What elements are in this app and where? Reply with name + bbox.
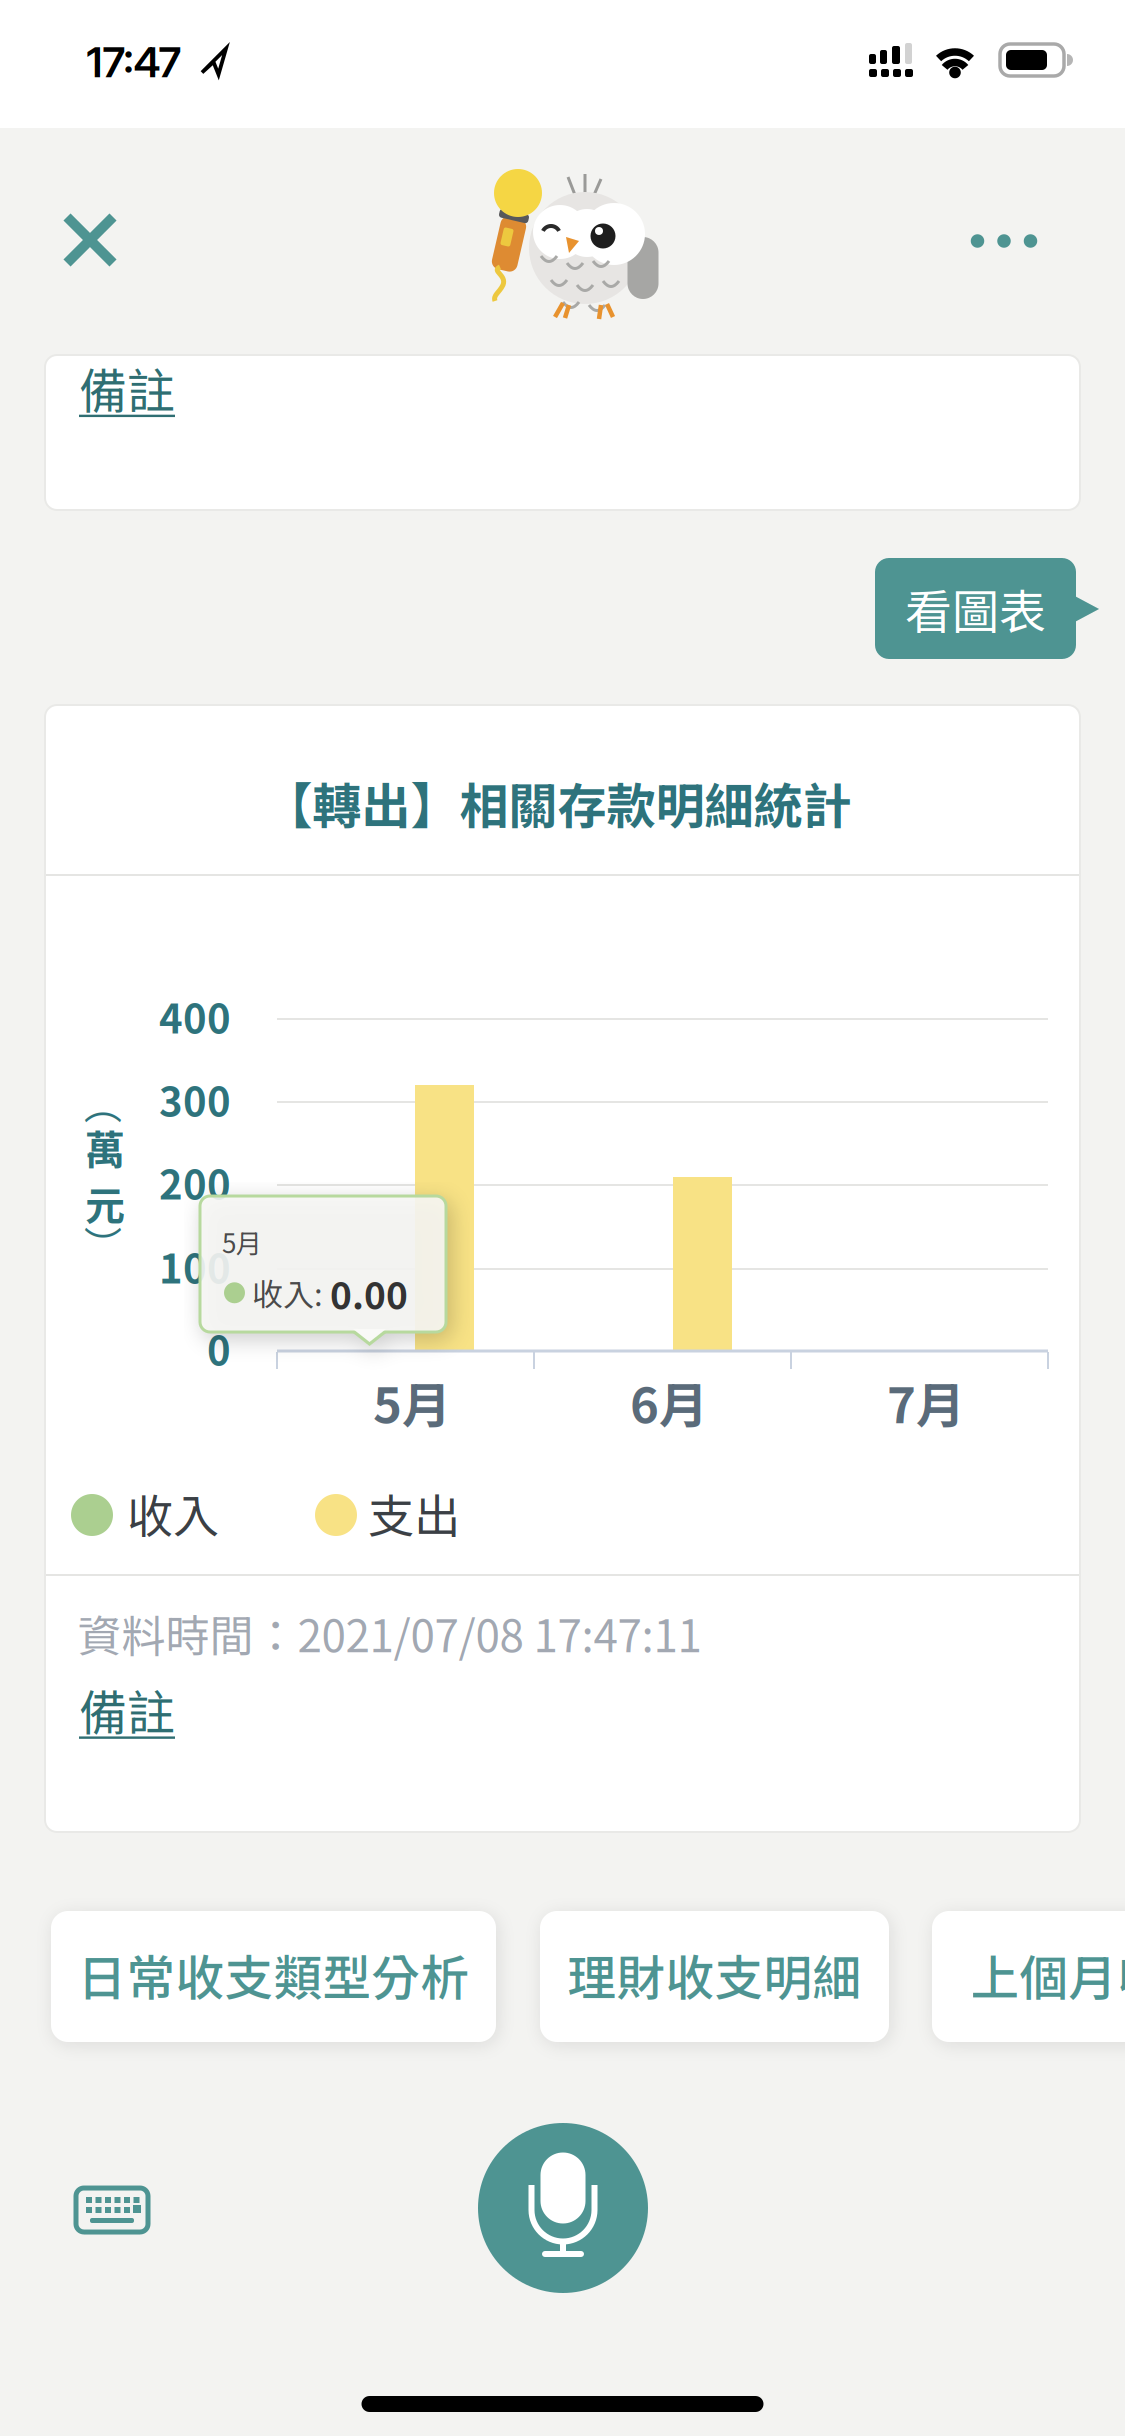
staticText: 【轉出】相關存款明細統計 [263, 767, 851, 838]
staticText: 看圖表 [905, 574, 1046, 643]
staticText: 支出 [368, 1480, 460, 1546]
button[interactable]: 備註 [45, 355, 1080, 510]
button[interactable]: 上個月收支明細 [932, 1911, 1125, 2042]
staticText: 收入 [127, 1480, 219, 1546]
button[interactable]: 日常收支類型分析 [51, 1911, 496, 2042]
staticText: 備註 [79, 1675, 175, 1744]
button[interactable]: 理財收支明細 [540, 1911, 889, 2042]
button[interactable]: Keyboard [66, 2178, 158, 2242]
staticText: 日常收支類型分析 [77, 1939, 469, 2010]
staticText: 收入: [245, 1270, 330, 1315]
staticText: 400 [159, 987, 231, 1045]
staticText: 萬 [85, 1118, 125, 1176]
staticText: （ [86, 1078, 124, 1133]
button[interactable]: Speak [478, 2123, 648, 2293]
staticText: 資料時間：2021/07/08 17:47:11 [77, 1601, 701, 1665]
staticText: 0 [207, 1319, 231, 1377]
staticText: 理財收支明細 [567, 1939, 861, 2010]
staticText: 5月 [373, 1366, 451, 1437]
staticText: 備註 [79, 353, 175, 422]
staticText: 17:47 [86, 37, 181, 87]
staticText: 0.00 [330, 1266, 408, 1320]
staticText: 7月 [887, 1366, 965, 1437]
button[interactable]: Close [51, 201, 129, 279]
staticText: 100 [159, 1237, 231, 1295]
staticText: 5月 [222, 1223, 262, 1261]
staticText: 200 [159, 1153, 231, 1211]
staticText: 上個月收支明細 [970, 1939, 1125, 2010]
staticText: ） [86, 1217, 124, 1272]
staticText: 300 [159, 1070, 231, 1128]
button[interactable]: 看圖表 [875, 558, 1100, 659]
button[interactable]: 備註 [69, 1665, 185, 1754]
staticText: 元 [85, 1174, 125, 1232]
button[interactable]: More [957, 220, 1051, 262]
staticText: 6月 [630, 1366, 708, 1437]
